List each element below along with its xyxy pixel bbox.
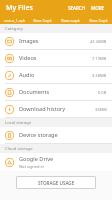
staticText: Download history xyxy=(19,105,95,113)
staticText: 7.19MB xyxy=(92,56,107,61)
button[interactable]: Base 3.apk xyxy=(84,16,112,24)
button[interactable]: Google Drive xyxy=(0,153,112,171)
staticText: com.a_1.apk xyxy=(4,18,25,23)
staticText: Videos xyxy=(19,54,92,62)
staticText: Documents xyxy=(19,88,98,96)
button[interactable]: Base 3.apk xyxy=(28,16,56,24)
staticText: Not signed in xyxy=(19,164,45,169)
staticText: Base o.apk xyxy=(61,18,80,23)
button[interactable]: Download history xyxy=(0,101,112,117)
staticText: Local storage xyxy=(5,120,32,126)
staticText: Images xyxy=(19,37,90,45)
staticText: 43.26MB xyxy=(90,39,107,44)
button[interactable]: STORAGE USAGE xyxy=(16,176,96,189)
button[interactable]: Documents xyxy=(0,84,112,100)
staticText: MORE xyxy=(91,5,105,11)
staticText: Google Drive xyxy=(19,155,54,163)
other: Download history xyxy=(5,105,14,114)
button[interactable]: Images xyxy=(0,33,112,49)
staticText: STORAGE USAGE xyxy=(38,180,75,186)
other: Google Drive xyxy=(5,158,14,167)
staticText: Base 3.apk xyxy=(89,18,108,23)
staticText: Base 3.apk xyxy=(33,18,52,23)
button[interactable]: Base o.apk xyxy=(56,16,84,24)
other: Images xyxy=(5,37,14,46)
other: Videos xyxy=(5,54,14,63)
button[interactable]: Audio xyxy=(0,67,112,83)
staticText: Cloud storage xyxy=(5,146,33,152)
other: Device storage xyxy=(5,131,14,140)
other: Audio xyxy=(5,71,14,80)
staticText: 3.38MB xyxy=(92,73,107,78)
staticText: Category xyxy=(5,26,23,32)
staticText: Device storage xyxy=(19,131,107,139)
staticText: 338KB xyxy=(95,107,107,112)
staticText: My Files xyxy=(6,3,33,13)
button[interactable]: SEARCH xyxy=(65,3,88,13)
button[interactable]: Videos xyxy=(0,50,112,66)
staticText: 0.0B xyxy=(98,90,107,95)
staticText: Audio xyxy=(19,71,92,79)
other: Documents xyxy=(5,88,14,97)
button[interactable]: MORE xyxy=(88,3,108,13)
button[interactable]: com.a_1.apk xyxy=(0,16,28,24)
staticText: SEARCH xyxy=(68,5,85,11)
button[interactable]: Device storage xyxy=(0,127,112,143)
